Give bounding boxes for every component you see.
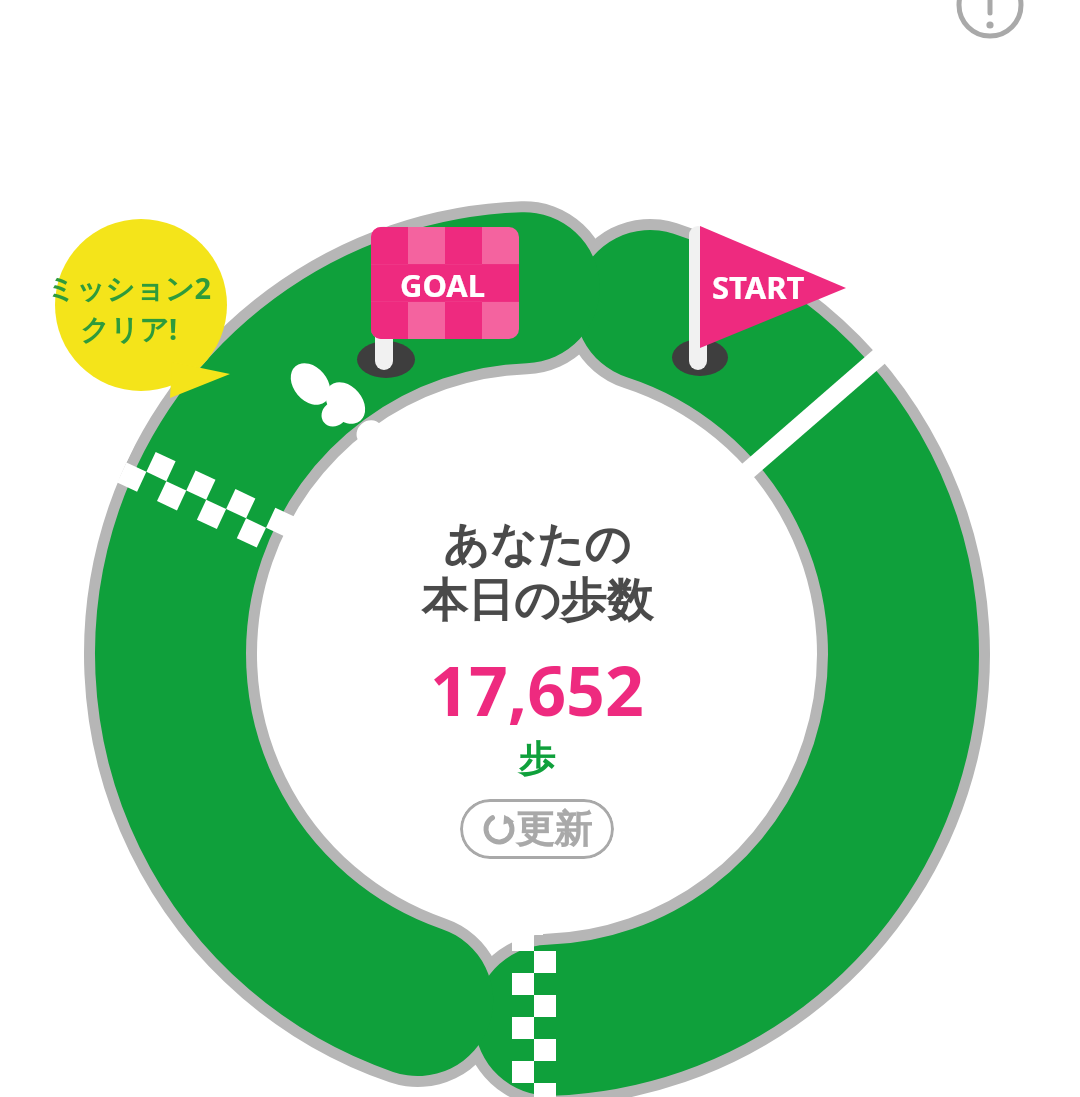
button[interactable]: Information — [955, 0, 1025, 40]
staticText: 歩 — [519, 736, 555, 781]
staticText: 17,652 — [430, 643, 644, 736]
button[interactable]: 更新 — [460, 799, 614, 859]
staticText: ミッション2 クリア! — [46, 268, 211, 349]
staticText: START — [712, 266, 805, 308]
staticText: 更新 — [516, 805, 592, 853]
staticText: GOAL — [400, 264, 486, 306]
staticText: あなたの 本日の歩数 — [421, 516, 653, 629]
